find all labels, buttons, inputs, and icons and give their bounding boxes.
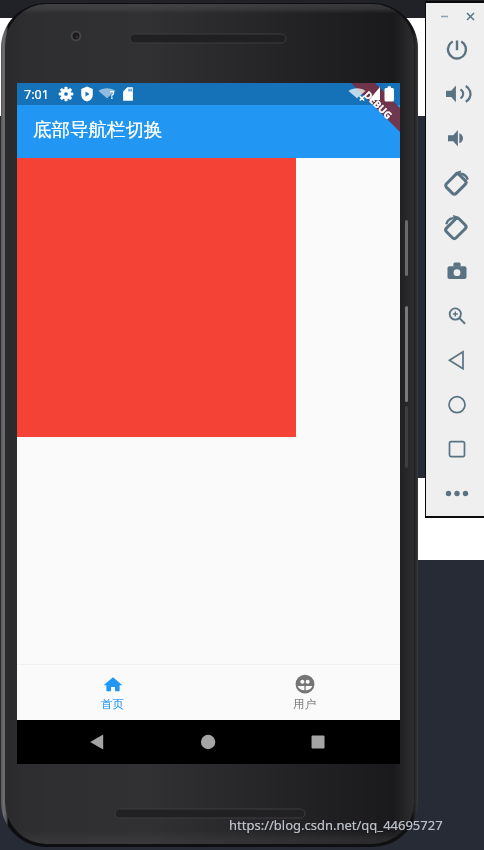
button[interactable]: 首页: [17, 665, 208, 720]
staticText: https://blog.csdn.net/qq_44695727: [229, 816, 443, 834]
other: Emulator controls: [426, 3, 484, 516]
staticText: 首页: [101, 697, 124, 711]
staticText: 底部导航栏切换: [33, 118, 163, 141]
button[interactable]: 用户: [208, 665, 400, 720]
staticText: 7:01: [24, 86, 49, 103]
staticText: DEBUG: [361, 88, 396, 122]
staticText: ?: [110, 88, 115, 102]
staticText: 用户: [293, 697, 316, 711]
